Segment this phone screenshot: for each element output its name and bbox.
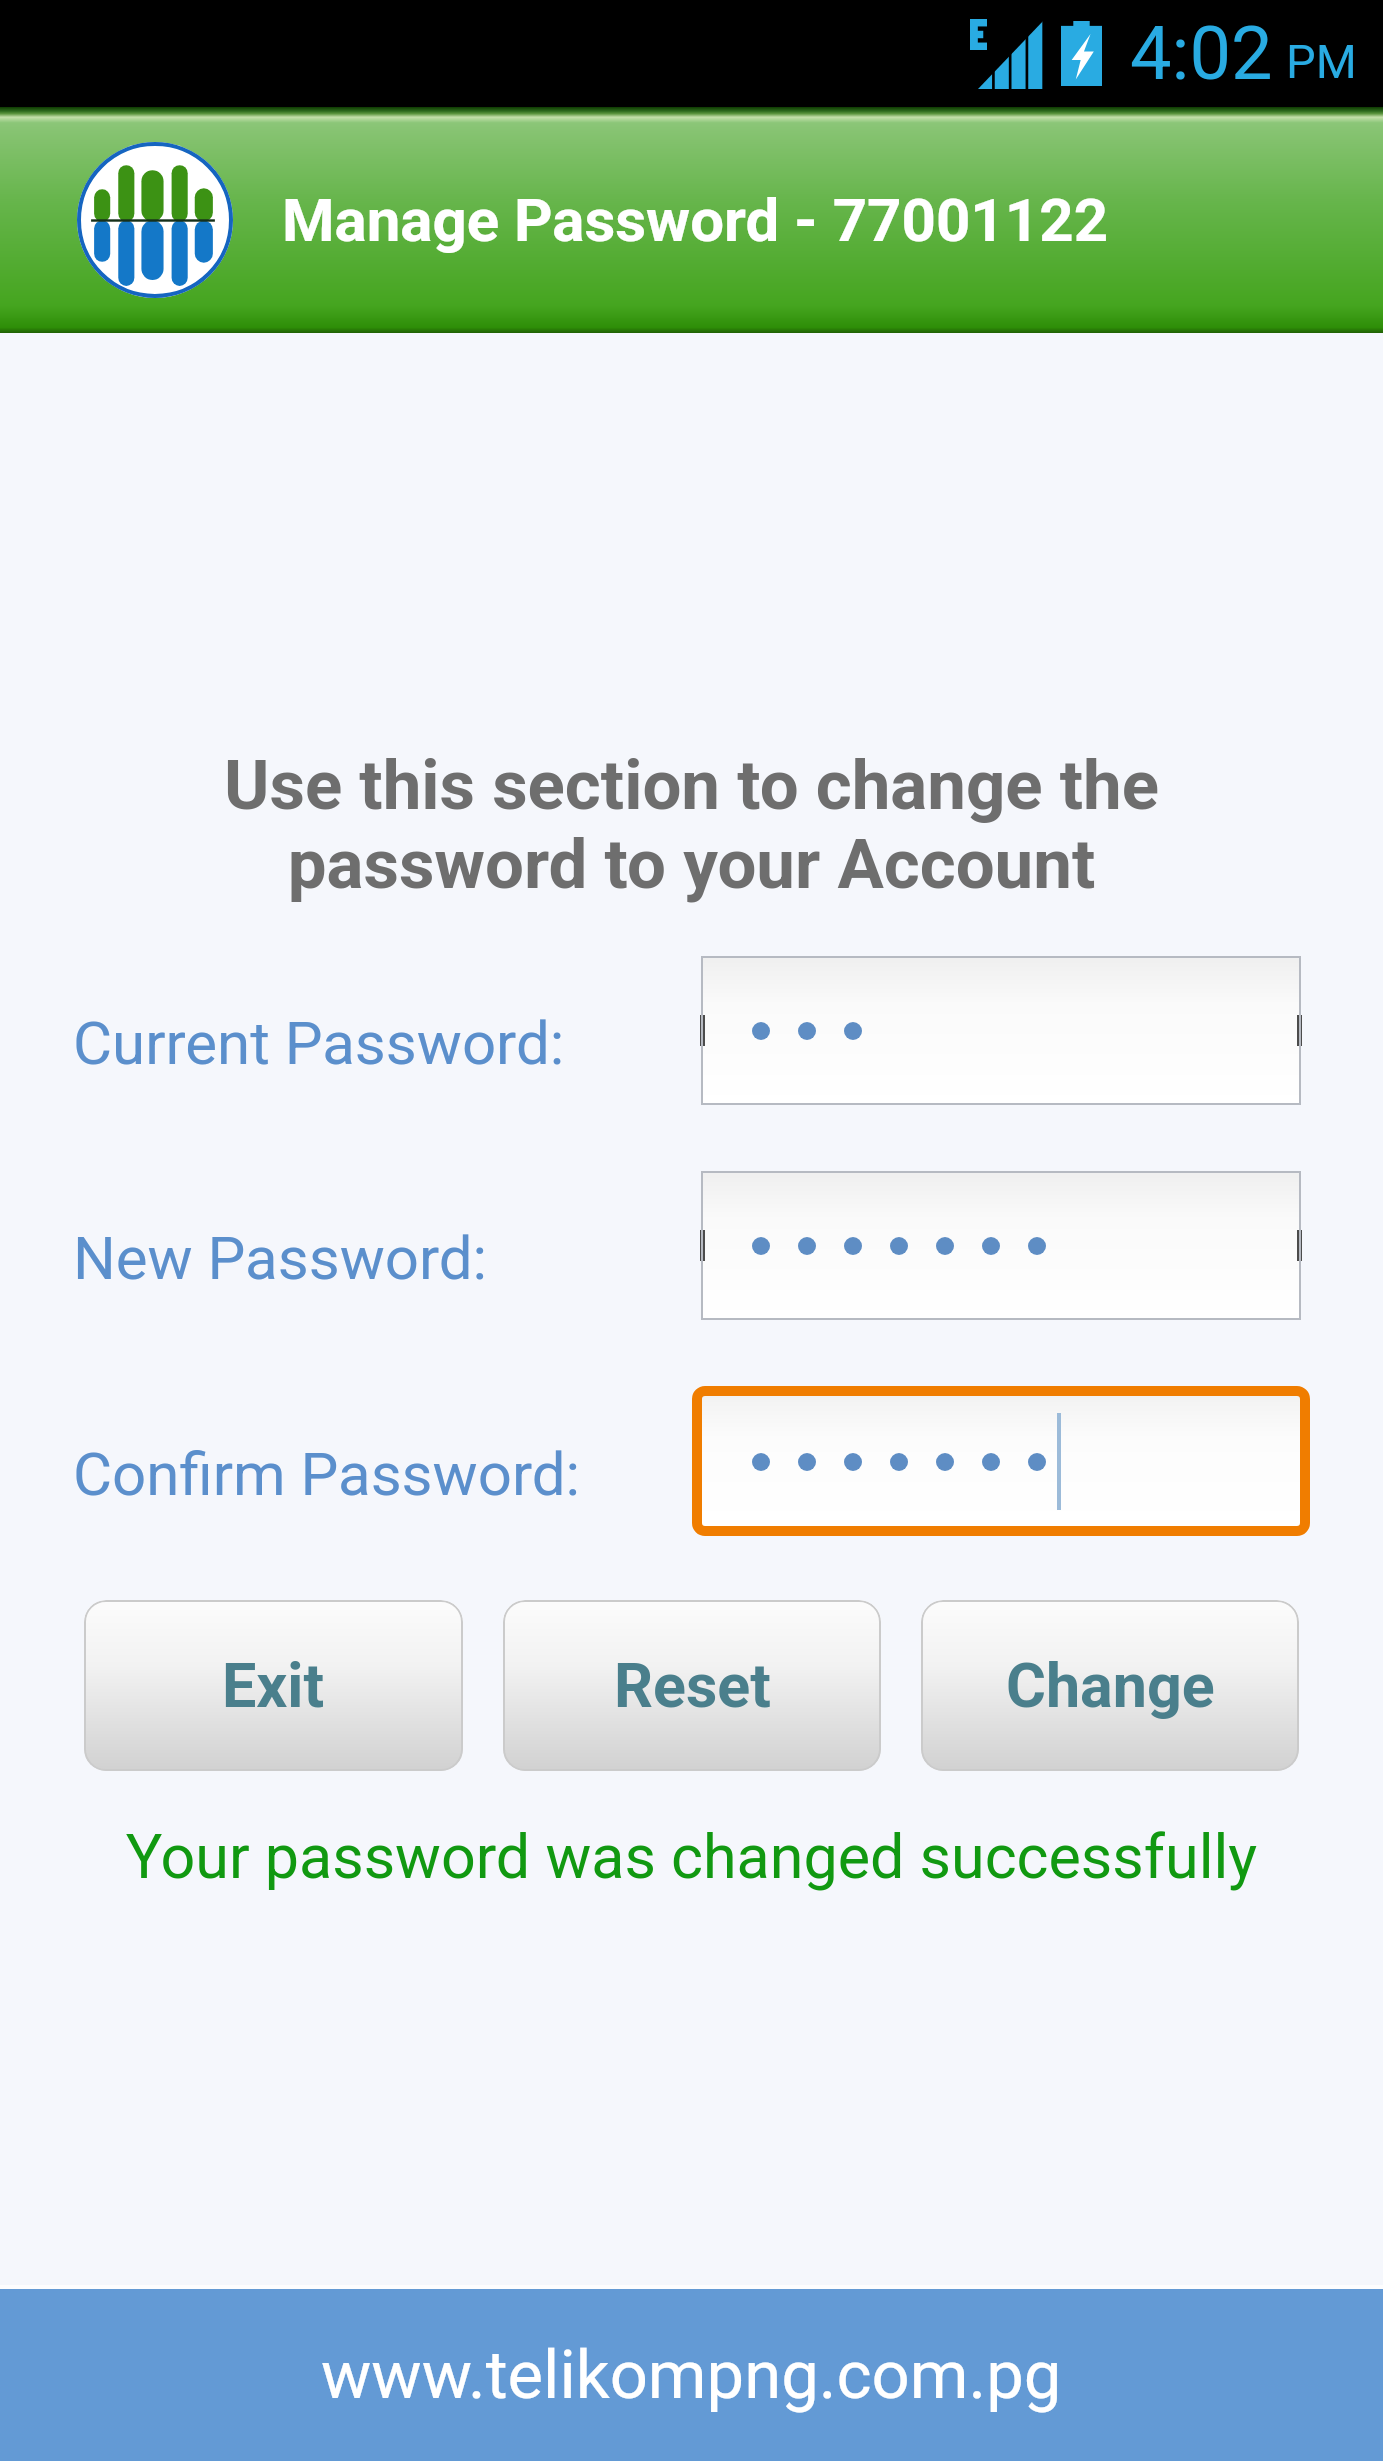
staticText: Change — [1006, 1650, 1215, 1721]
staticText: Manage Password - 77001122 — [282, 185, 1109, 255]
staticText: 4:02 — [1130, 10, 1273, 97]
button[interactable] — [701, 956, 1301, 1105]
other: EDGE signal strength — [970, 19, 1045, 89]
button[interactable]: Change — [921, 1600, 1299, 1771]
staticText: Current Password: — [73, 1008, 565, 1078]
staticText: Exit — [222, 1650, 325, 1721]
staticText: Reset — [614, 1650, 771, 1721]
staticText: www.telikompng.com.pg — [321, 2336, 1062, 2415]
staticText: PM — [1286, 34, 1357, 89]
staticText: Confirm Password: — [73, 1439, 581, 1509]
button[interactable] — [701, 1171, 1301, 1320]
staticText: New Password: — [73, 1223, 488, 1293]
button[interactable]: Reset — [503, 1600, 881, 1771]
other: Telikom PNG logo — [77, 142, 233, 298]
button[interactable]: www.telikompng.com.pg — [0, 2289, 1383, 2461]
staticText: Your password was changed successfully — [0, 1821, 1383, 1892]
staticText: Use this section to change the password … — [0, 745, 1383, 904]
other: Battery charging — [1061, 21, 1102, 86]
button[interactable] — [702, 1396, 1300, 1526]
button[interactable]: Exit — [84, 1600, 463, 1771]
